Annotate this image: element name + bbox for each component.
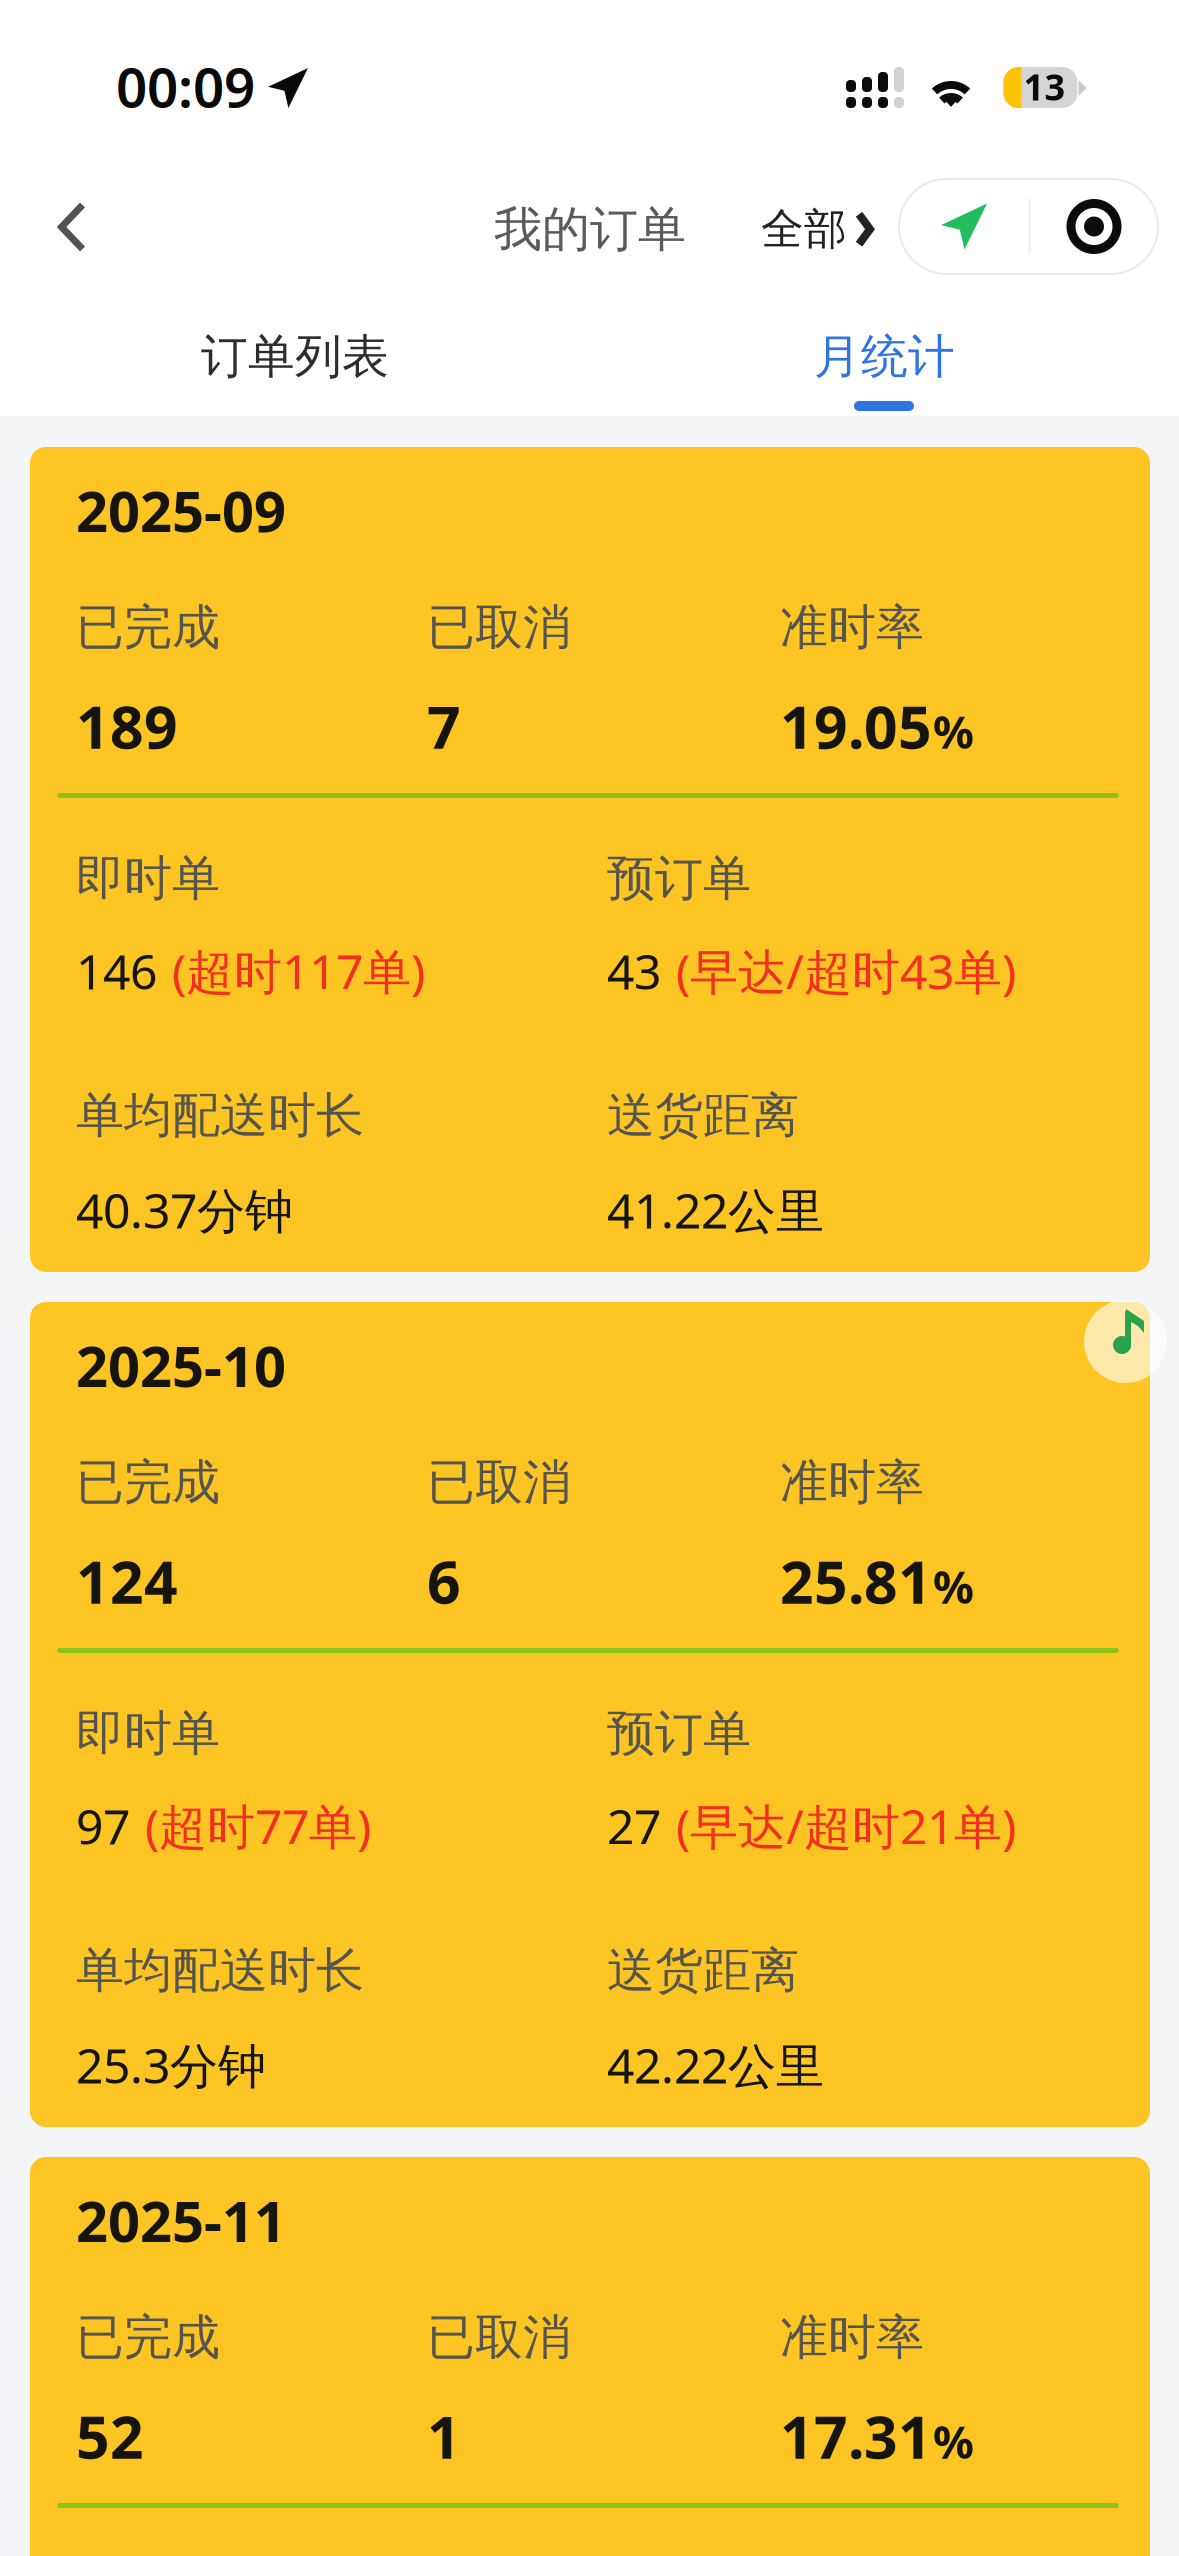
staticText: 6 (427, 1542, 461, 1620)
button[interactable]: 2025-09 (30, 447, 1150, 1272)
staticText: 2025-09 (76, 473, 286, 547)
staticText: 即时单 (76, 1704, 220, 1763)
staticText: 送货距离 (607, 1086, 799, 1145)
staticText: 月统计 (814, 328, 955, 385)
staticText: 2025-11 (76, 2183, 286, 2257)
staticText: 43 (607, 939, 661, 1003)
staticText: 预订单 (607, 849, 751, 908)
staticText: % (933, 2411, 974, 2471)
staticText: 97 (76, 1794, 130, 1858)
staticText: 42.22公里 (607, 2033, 824, 2097)
button[interactable]: More options (1030, 179, 1157, 274)
staticText: 送货距离 (607, 1941, 799, 2000)
staticText: % (933, 1556, 974, 1616)
staticText: 00:09 (116, 50, 255, 123)
staticText: 19.05 (780, 687, 932, 765)
staticText: 41.22公里 (607, 1178, 824, 1242)
staticText: 已取消 (427, 598, 571, 657)
staticText: 已完成 (76, 598, 220, 657)
button[interactable]: Location (899, 179, 1028, 274)
staticText: 全部 (761, 203, 847, 255)
staticText: (早达/超时21单) (676, 1794, 1016, 1858)
staticText: 1 (427, 2397, 461, 2475)
staticText: 146 (76, 939, 157, 1003)
staticText: (早达/超时43单) (676, 939, 1016, 1003)
staticText: 已取消 (427, 1453, 571, 1512)
staticText: 25.3分钟 (76, 2033, 266, 2097)
button[interactable]: 全部 (761, 183, 874, 275)
button[interactable]: 2025-11 (30, 2157, 1150, 2556)
staticText: 预订单 (607, 1704, 751, 1763)
staticText: 准时率 (780, 1453, 924, 1512)
staticText: 124 (76, 1542, 178, 1620)
staticText: 52 (76, 2397, 144, 2475)
staticText: 7 (427, 687, 461, 765)
staticText: 订单列表 (201, 328, 389, 385)
staticText: 189 (76, 687, 178, 765)
staticText: 25.81 (780, 1542, 932, 1620)
staticText: 单均配送时长 (76, 1941, 364, 2000)
staticText: (超时77单) (145, 1794, 371, 1858)
staticText: (超时117单) (172, 939, 425, 1003)
staticText: 准时率 (780, 2308, 924, 2367)
staticText: 27 (607, 1794, 661, 1858)
button[interactable]: 月统计 (590, 328, 1179, 476)
button[interactable]: 2025-10 (30, 1302, 1150, 2127)
button[interactable]: Music player (1084, 1300, 1167, 1383)
staticText: 17.31 (780, 2397, 932, 2475)
staticText: 单均配送时长 (76, 1086, 364, 1145)
staticText: 已取消 (427, 2308, 571, 2367)
button[interactable]: 订单列表 (0, 328, 590, 476)
staticText: 我的订单 (494, 200, 686, 259)
staticText: 13 (1023, 63, 1065, 110)
staticText: 已完成 (76, 2308, 220, 2367)
button[interactable]: Back (0, 173, 144, 281)
staticText: 40.37分钟 (76, 1178, 293, 1242)
staticText: % (933, 701, 974, 761)
staticText: 已完成 (76, 1453, 220, 1512)
staticText: 2025-10 (76, 1328, 286, 1402)
staticText: 准时率 (780, 598, 924, 657)
staticText: 即时单 (76, 849, 220, 908)
